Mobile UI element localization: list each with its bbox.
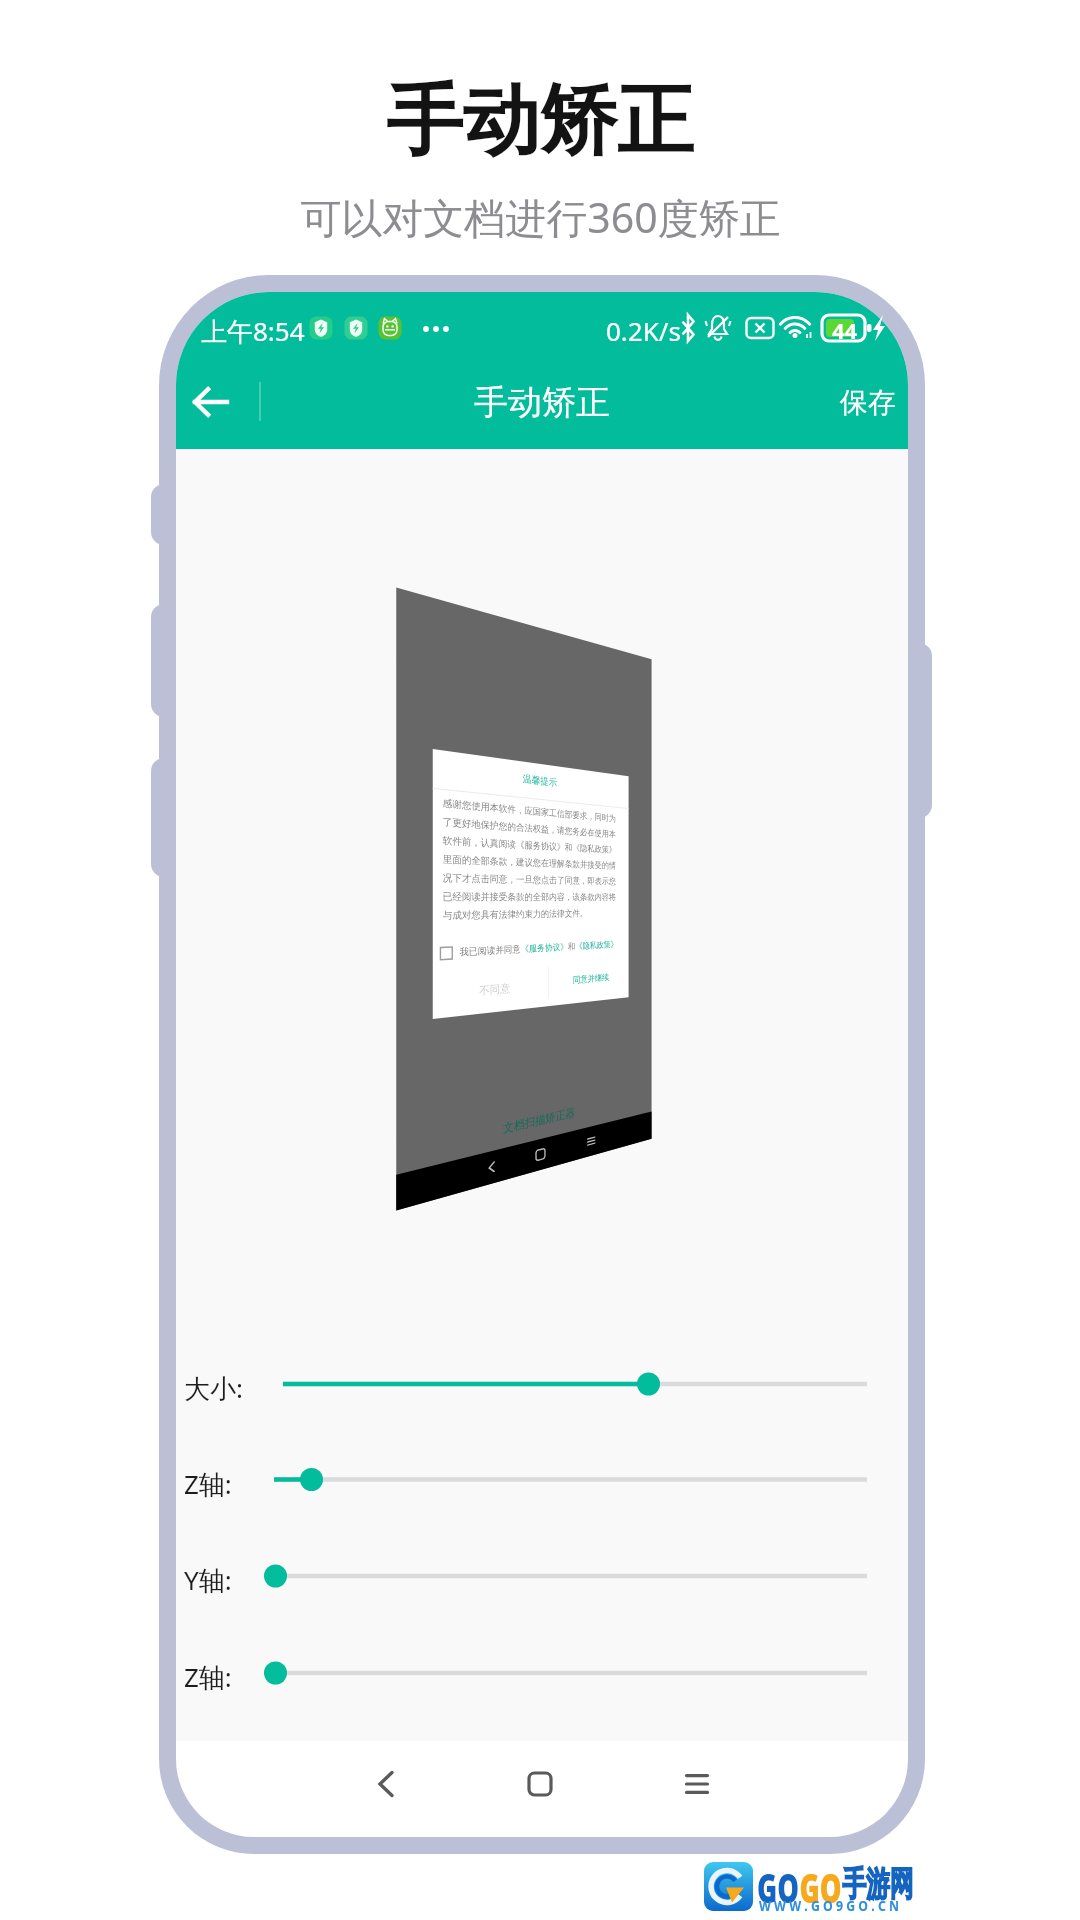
staticText: 《服务协议》 bbox=[521, 942, 568, 955]
button[interactable]: 主页 bbox=[494, 1740, 586, 1828]
staticText: 和 bbox=[568, 941, 575, 952]
staticText: 0.2K/s bbox=[606, 313, 681, 348]
staticText: 《隐私政策》 bbox=[575, 939, 617, 952]
button[interactable]: 不同意 bbox=[479, 977, 510, 1001]
staticText: 手动矫正 bbox=[386, 73, 694, 170]
staticText: 手游网 bbox=[842, 1862, 913, 1906]
button[interactable]: 返回 bbox=[340, 1740, 432, 1828]
staticText: 文档扫描矫正器 bbox=[503, 1105, 575, 1136]
staticText: Y轴: bbox=[184, 1562, 232, 1598]
button[interactable]: 最近任务 bbox=[651, 1740, 743, 1828]
button[interactable]: Y轴: bbox=[184, 1540, 866, 1612]
staticText: 同意并继续 bbox=[573, 971, 609, 985]
staticText: Z轴: bbox=[184, 1466, 232, 1502]
button[interactable]: 我已阅读并同意 bbox=[440, 937, 612, 962]
button[interactable]: 返回 bbox=[176, 355, 246, 449]
staticText: 我已阅读并同意 bbox=[460, 944, 521, 959]
staticText: 手动矫正 bbox=[474, 381, 610, 424]
staticText: GO bbox=[757, 1860, 799, 1915]
staticText: 上午8:54 bbox=[201, 313, 305, 349]
staticText: 不同意 bbox=[479, 981, 510, 998]
button[interactable]: 大小: bbox=[184, 1348, 866, 1420]
button[interactable]: 保存 bbox=[816, 355, 908, 449]
staticText: 保存 bbox=[840, 385, 896, 420]
staticText: 感谢您使用本软件，应国家工信部要求，同时为了更好地保护您的合法权益，请您务必在使… bbox=[443, 797, 620, 922]
button[interactable]: 同意并继续 bbox=[573, 967, 609, 989]
button[interactable]: Z轴: bbox=[184, 1637, 866, 1709]
staticText: Z轴: bbox=[184, 1659, 232, 1695]
staticText: 大小: bbox=[184, 1370, 243, 1406]
staticText: GO bbox=[799, 1860, 842, 1915]
button[interactable]: Z轴: bbox=[184, 1444, 866, 1516]
staticText: 可以对文档进行360度矫正 bbox=[300, 189, 781, 245]
staticText: W W W . G O 9 G O . C N bbox=[759, 1895, 899, 1915]
staticText: 44 bbox=[832, 315, 858, 345]
staticText: 温馨提示 bbox=[523, 773, 558, 789]
